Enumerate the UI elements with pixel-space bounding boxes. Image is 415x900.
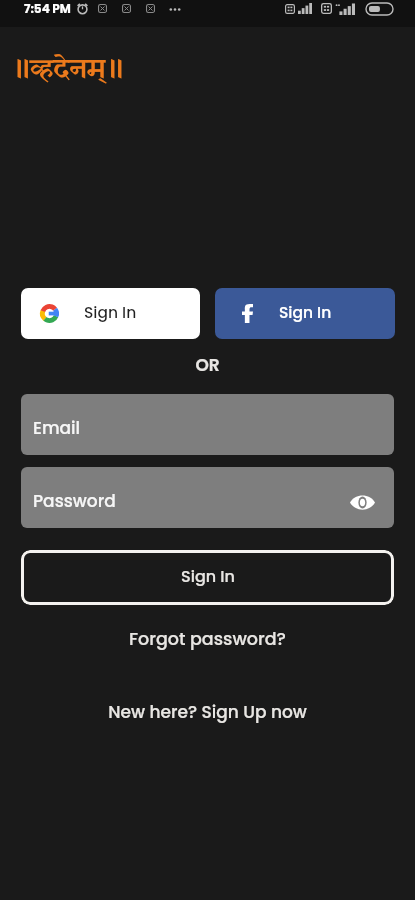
staticText: Sign In <box>84 302 137 324</box>
button[interactable]: Sign In <box>215 288 395 339</box>
staticText: Password <box>33 489 116 513</box>
button[interactable]: Forgot password? <box>0 627 415 652</box>
button[interactable]: New here? Sign Up now <box>0 700 415 724</box>
staticText: OR <box>0 353 415 377</box>
button[interactable]: Sign In <box>21 550 394 605</box>
button[interactable]: Sign In <box>21 288 200 339</box>
button[interactable]: Email <box>21 394 394 455</box>
staticText: Email <box>33 416 81 440</box>
staticText: 7:54 PM <box>24 0 71 17</box>
staticText: Sign In <box>279 302 332 324</box>
button[interactable]: Show password <box>346 486 378 518</box>
staticText: ॥व्हदेनम्॥ <box>12 50 123 90</box>
staticText: Sign In <box>181 565 235 587</box>
button[interactable]: Password <box>21 467 394 528</box>
